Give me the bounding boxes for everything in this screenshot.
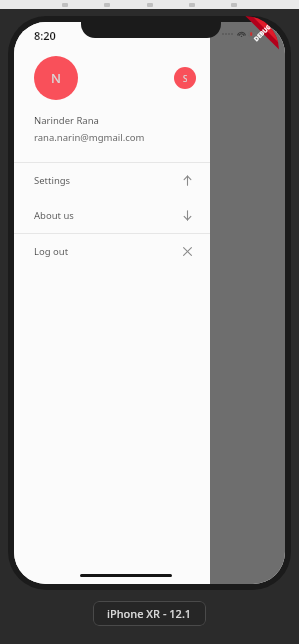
button[interactable] bbox=[210, 22, 285, 584]
button[interactable]: Profile avatar bbox=[34, 56, 78, 100]
staticText: rana.narin@mgmail.com bbox=[34, 131, 145, 144]
other: Arrow up bbox=[181, 174, 194, 187]
other: Wi-Fi bbox=[237, 29, 246, 38]
other: Close bbox=[181, 245, 194, 258]
staticText: Settings bbox=[34, 174, 71, 187]
staticText: Narinder Rana bbox=[34, 114, 99, 127]
other: Arrow down bbox=[181, 209, 194, 222]
staticText: DEBUG bbox=[252, 23, 273, 43]
button[interactable]: iPhone XR - 12.1 bbox=[107, 606, 192, 621]
staticText: N bbox=[51, 69, 61, 87]
button[interactable]: About us bbox=[14, 198, 210, 233]
other: Battery bbox=[249, 31, 260, 37]
staticText: About us bbox=[34, 209, 74, 222]
button[interactable]: Secondary account bbox=[174, 67, 196, 89]
staticText: iPhone XR - 12.1 bbox=[107, 606, 192, 621]
button[interactable]: Settings bbox=[14, 163, 210, 198]
button[interactable]: Log out bbox=[14, 234, 210, 269]
staticText: S bbox=[183, 73, 188, 84]
staticText: 8:20 bbox=[34, 28, 56, 43]
staticText: Log out bbox=[34, 245, 69, 258]
